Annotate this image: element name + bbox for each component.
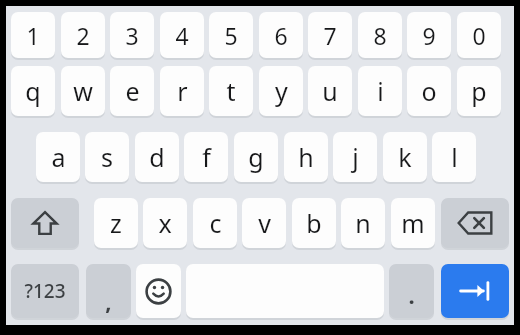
button[interactable]: h <box>284 132 328 182</box>
staticText: u <box>322 74 338 108</box>
button[interactable]: u <box>308 66 352 116</box>
staticText: x <box>158 206 172 240</box>
staticText: 1 <box>26 20 40 51</box>
staticText: g <box>248 140 264 174</box>
button[interactable]: s <box>85 132 129 182</box>
staticText: o <box>421 74 437 108</box>
button[interactable]: e <box>110 66 154 116</box>
staticText: r <box>177 74 188 108</box>
button[interactable]: y <box>259 66 303 116</box>
button[interactable]: ?123 <box>11 264 79 318</box>
staticText: 7 <box>323 20 337 51</box>
staticText: a <box>51 140 66 174</box>
staticText: p <box>471 74 487 108</box>
button[interactable]: f <box>184 132 228 182</box>
staticText: d <box>149 140 165 174</box>
button[interactable]: x <box>143 198 187 248</box>
staticText: h <box>298 140 314 174</box>
staticText: m <box>401 206 425 240</box>
button[interactable]: Emoji <box>136 264 181 318</box>
staticText: b <box>306 206 322 240</box>
staticText: , <box>105 286 112 316</box>
button[interactable]: 2 <box>61 12 105 58</box>
staticText: w <box>73 74 93 108</box>
staticText: 3 <box>125 20 139 51</box>
button[interactable]: v <box>242 198 286 248</box>
staticText: c <box>209 206 222 240</box>
button[interactable]: i <box>358 66 402 116</box>
staticText: 6 <box>274 20 288 51</box>
staticText: e <box>125 74 140 108</box>
staticText: y <box>275 74 288 108</box>
button[interactable]: 4 <box>160 12 204 58</box>
staticText: 9 <box>422 20 436 51</box>
staticText: l <box>451 140 458 174</box>
staticText: 8 <box>373 20 387 51</box>
button[interactable]: , <box>86 264 131 318</box>
button[interactable]: n <box>341 198 385 248</box>
button[interactable]: k <box>383 132 427 182</box>
button[interactable]: . <box>389 264 434 318</box>
staticText: v <box>258 206 271 240</box>
button[interactable]: b <box>292 198 336 248</box>
staticText: 0 <box>472 20 486 51</box>
staticText: n <box>355 206 371 240</box>
button[interactable]: j <box>333 132 377 182</box>
button[interactable]: 3 <box>110 12 154 58</box>
staticText: 5 <box>224 20 238 51</box>
staticText: ?123 <box>24 278 66 304</box>
button[interactable]: g <box>234 132 278 182</box>
button[interactable]: q <box>11 66 55 116</box>
button[interactable]: t <box>209 66 253 116</box>
button[interactable]: 0 <box>457 12 501 58</box>
staticText: k <box>398 140 412 174</box>
button[interactable]: 1 <box>11 12 55 58</box>
button[interactable]: c <box>193 198 237 248</box>
button[interactable]: Shift <box>11 198 79 248</box>
button[interactable]: a <box>36 132 80 182</box>
button[interactable]: d <box>135 132 179 182</box>
button[interactable]: z <box>94 198 138 248</box>
button[interactable]: 9 <box>407 12 451 58</box>
button[interactable]: 6 <box>259 12 303 58</box>
staticText: f <box>202 140 211 174</box>
staticText: s <box>101 140 113 174</box>
staticText: z <box>110 206 122 240</box>
button[interactable]: 8 <box>358 12 402 58</box>
staticText: 4 <box>175 20 189 51</box>
button[interactable]: r <box>160 66 204 116</box>
button[interactable]: Enter <box>441 264 509 318</box>
staticText: t <box>226 74 236 108</box>
button[interactable]: o <box>407 66 451 116</box>
staticText: q <box>25 74 41 108</box>
staticText: 2 <box>76 20 90 51</box>
staticText: i <box>377 74 384 108</box>
button[interactable]: p <box>457 66 501 116</box>
button[interactable]: 7 <box>308 12 352 58</box>
staticText: j <box>352 140 359 174</box>
button[interactable]: l <box>432 132 476 182</box>
button[interactable]: w <box>61 66 105 116</box>
button[interactable]: 5 <box>209 12 253 58</box>
staticText: . <box>408 280 415 310</box>
button[interactable]: Backspace <box>441 198 509 248</box>
button[interactable]: m <box>391 198 435 248</box>
